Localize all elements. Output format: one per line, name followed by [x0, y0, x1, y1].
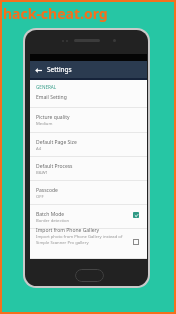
- staticText: Batch Mode: [36, 211, 65, 218]
- staticText: A4: [36, 146, 42, 152]
- staticText: Passcode: [36, 187, 58, 194]
- staticText: Picture quality: [36, 114, 70, 121]
- button[interactable]: Back: [33, 65, 43, 75]
- button[interactable]: Import from Phone Gallery: [30, 229, 147, 259]
- button[interactable]: Batch Mode: [30, 205, 147, 229]
- staticText: Settings: [47, 65, 72, 74]
- button[interactable]: Home: [75, 269, 104, 282]
- button[interactable]: Passcode: [30, 181, 147, 205]
- button[interactable]: Default Process: [30, 157, 147, 181]
- button[interactable]: Picture quality: [30, 108, 147, 133]
- staticText: Default Page Size: [36, 139, 77, 146]
- staticText: hack-cheat.org: [3, 4, 108, 23]
- staticText: OFF: [36, 194, 44, 200]
- staticText: Import from Phone Gallery: [36, 227, 100, 234]
- staticText: Medium: [36, 121, 53, 127]
- staticText: Email Setting: [36, 94, 67, 101]
- staticText: Import photo from Phone Gallery instead …: [36, 234, 123, 240]
- staticText: Default Process: [36, 163, 73, 170]
- staticText: Simple Scanner Pro gallery: [36, 240, 89, 246]
- button[interactable]: Batch Mode: [131, 210, 141, 220]
- button[interactable]: Default Page Size: [30, 133, 147, 157]
- staticText: Border detection: [36, 218, 70, 224]
- button[interactable]: GENERAL: [30, 80, 147, 108]
- button[interactable]: Import from Phone Gallery: [131, 237, 141, 247]
- staticText: GENERAL: [36, 84, 57, 90]
- staticText: B&W1: [36, 170, 48, 176]
